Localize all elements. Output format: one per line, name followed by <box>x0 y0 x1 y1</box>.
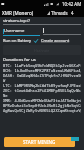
staticText: XMR (Monero) <box>2 10 34 16</box>
staticText: START MINING <box>23 139 56 145</box>
staticText: stratum+tcp://xmr.pool.minergate.com:455… <box>3 18 81 23</box>
staticText: Donations for us <box>3 57 36 63</box>
staticText: Threads <box>51 10 68 16</box>
button[interactable]: Create account <box>41 38 70 43</box>
staticText: 10:42 AM <box>62 1 82 7</box>
staticText: Run on Battery <box>3 38 32 43</box>
button[interactable]: Threads <box>47 10 74 16</box>
button[interactable]: Run on Battery <box>3 38 38 43</box>
staticText: 4 <box>71 10 74 16</box>
staticText: Username <box>4 28 25 34</box>
staticText: BTC: 1LwPrk5eqG9bYcWNQXk1pZvrG6XzFcJKeTm… <box>3 63 81 113</box>
staticText: Hashrate <box>34 48 50 53</box>
other: Run on battery checkbox <box>34 39 38 43</box>
button[interactable]: START MINING <box>4 137 75 147</box>
